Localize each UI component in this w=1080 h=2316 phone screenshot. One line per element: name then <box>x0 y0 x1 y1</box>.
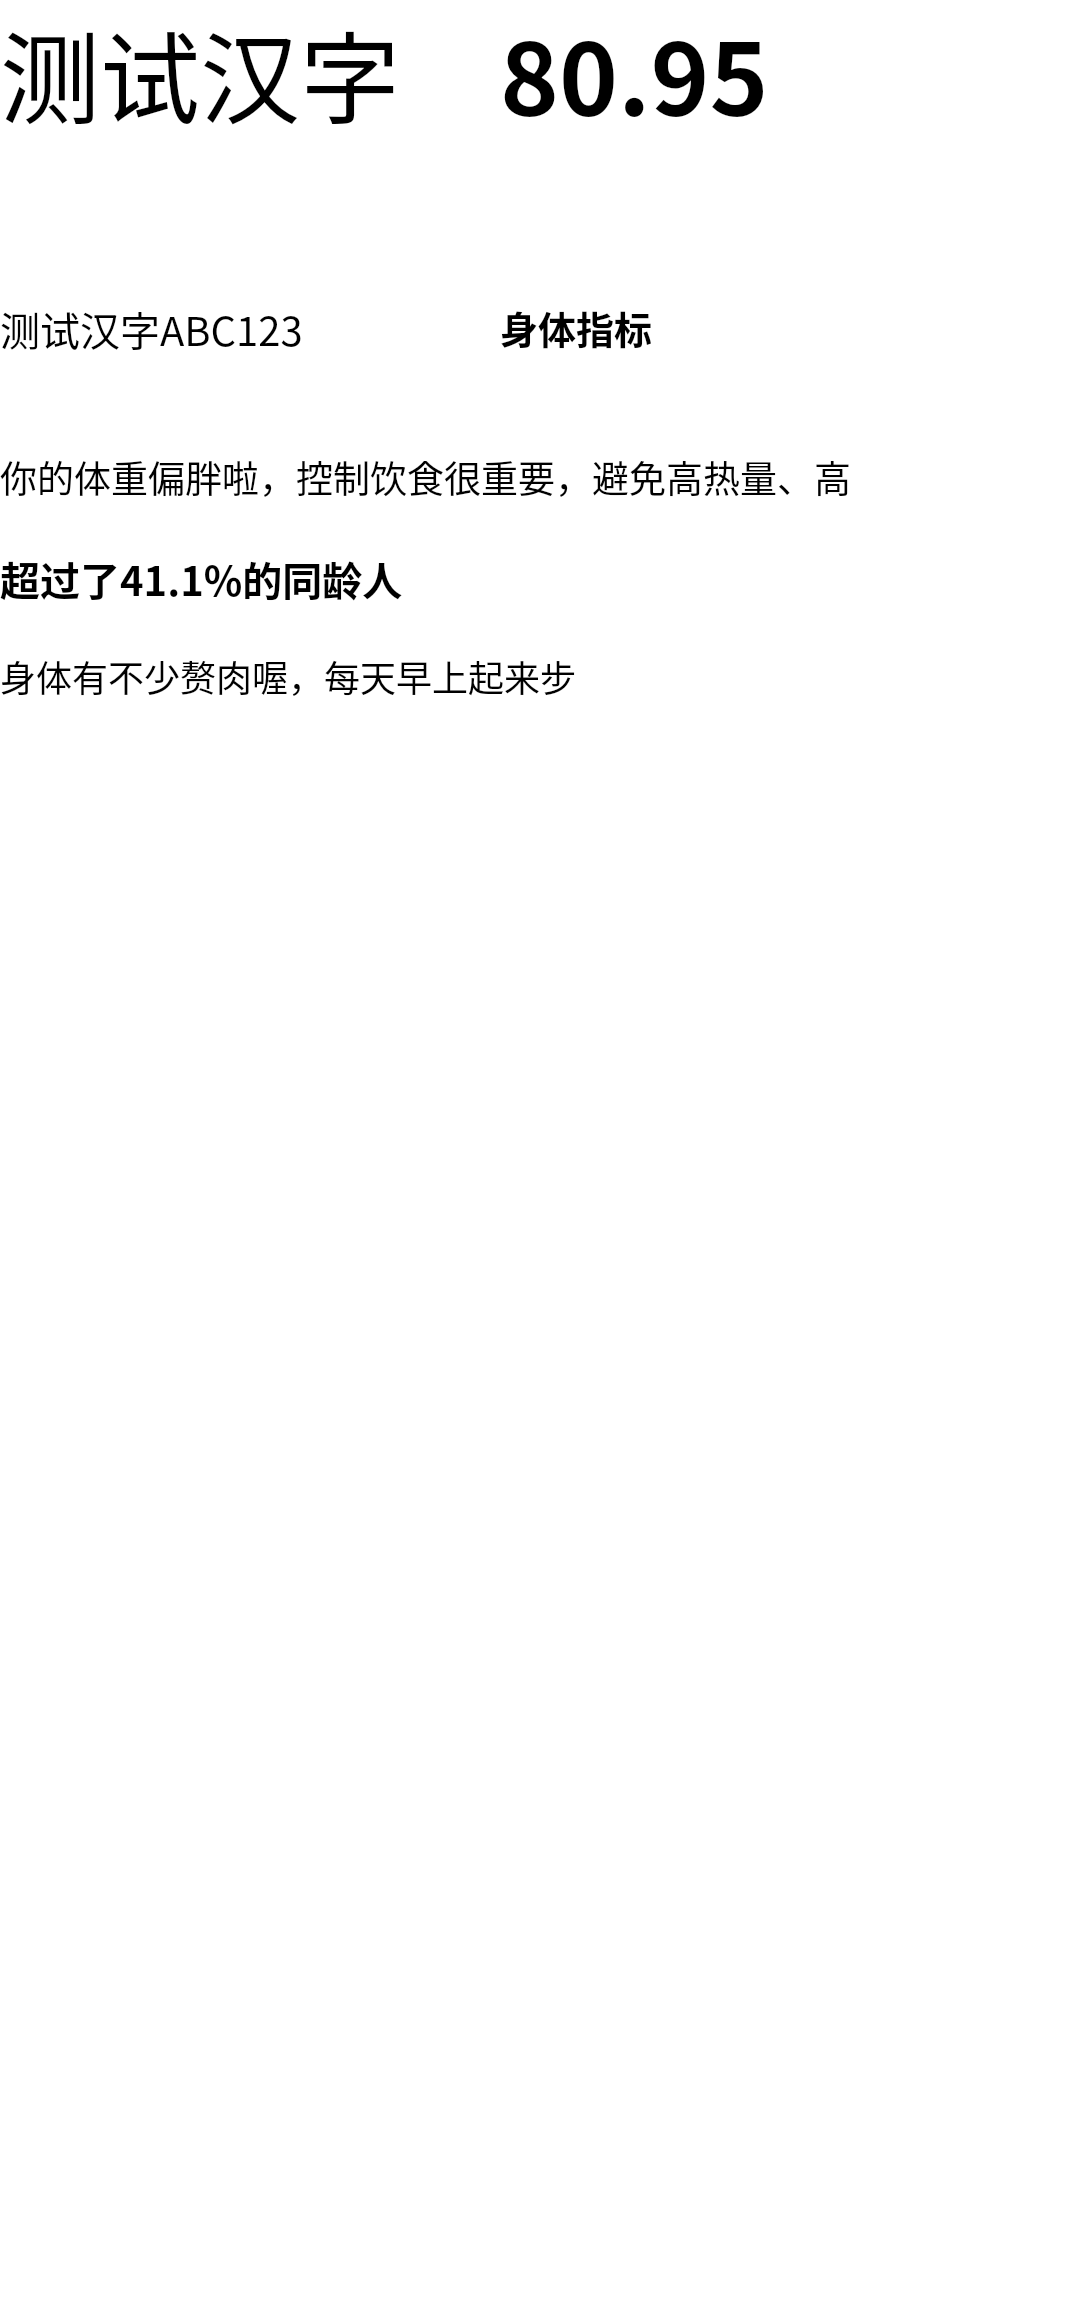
staticText: 身体有不少赘肉喔，每天早上起来步 <box>0 650 577 702</box>
staticText: 身体指标 <box>500 300 653 355</box>
staticText: 测试汉字ABC123 <box>0 300 303 358</box>
staticText: 80.95 <box>500 0 769 145</box>
staticText: 你的体重偏胖啦，控制饮食很重要，避免高热量、高 <box>0 450 851 504</box>
staticText: 测试汉字 <box>0 0 400 145</box>
staticText: 超过了41.1%的同龄人 <box>0 550 403 608</box>
